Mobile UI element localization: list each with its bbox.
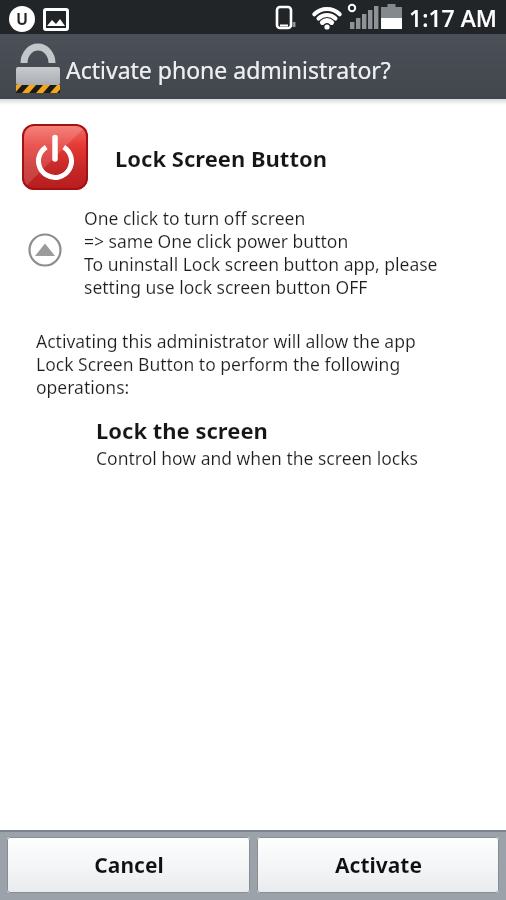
button[interactable]: Activate xyxy=(257,837,499,893)
staticText: Activating this administrator will allow… xyxy=(36,329,416,399)
staticText: One click to turn off screen => same One… xyxy=(84,206,438,299)
staticText: Activate phone administrator? xyxy=(66,54,391,85)
staticText: U xyxy=(16,8,29,30)
staticText: Activate xyxy=(335,851,422,880)
staticText: Lock Screen Button xyxy=(115,143,327,173)
staticText: 1:17 AM xyxy=(409,2,497,33)
staticText: Lock the screen xyxy=(96,415,268,445)
staticText: Control how and when the screen locks xyxy=(96,446,418,470)
button[interactable]: Cancel xyxy=(7,837,250,893)
staticText: Cancel xyxy=(94,851,164,880)
